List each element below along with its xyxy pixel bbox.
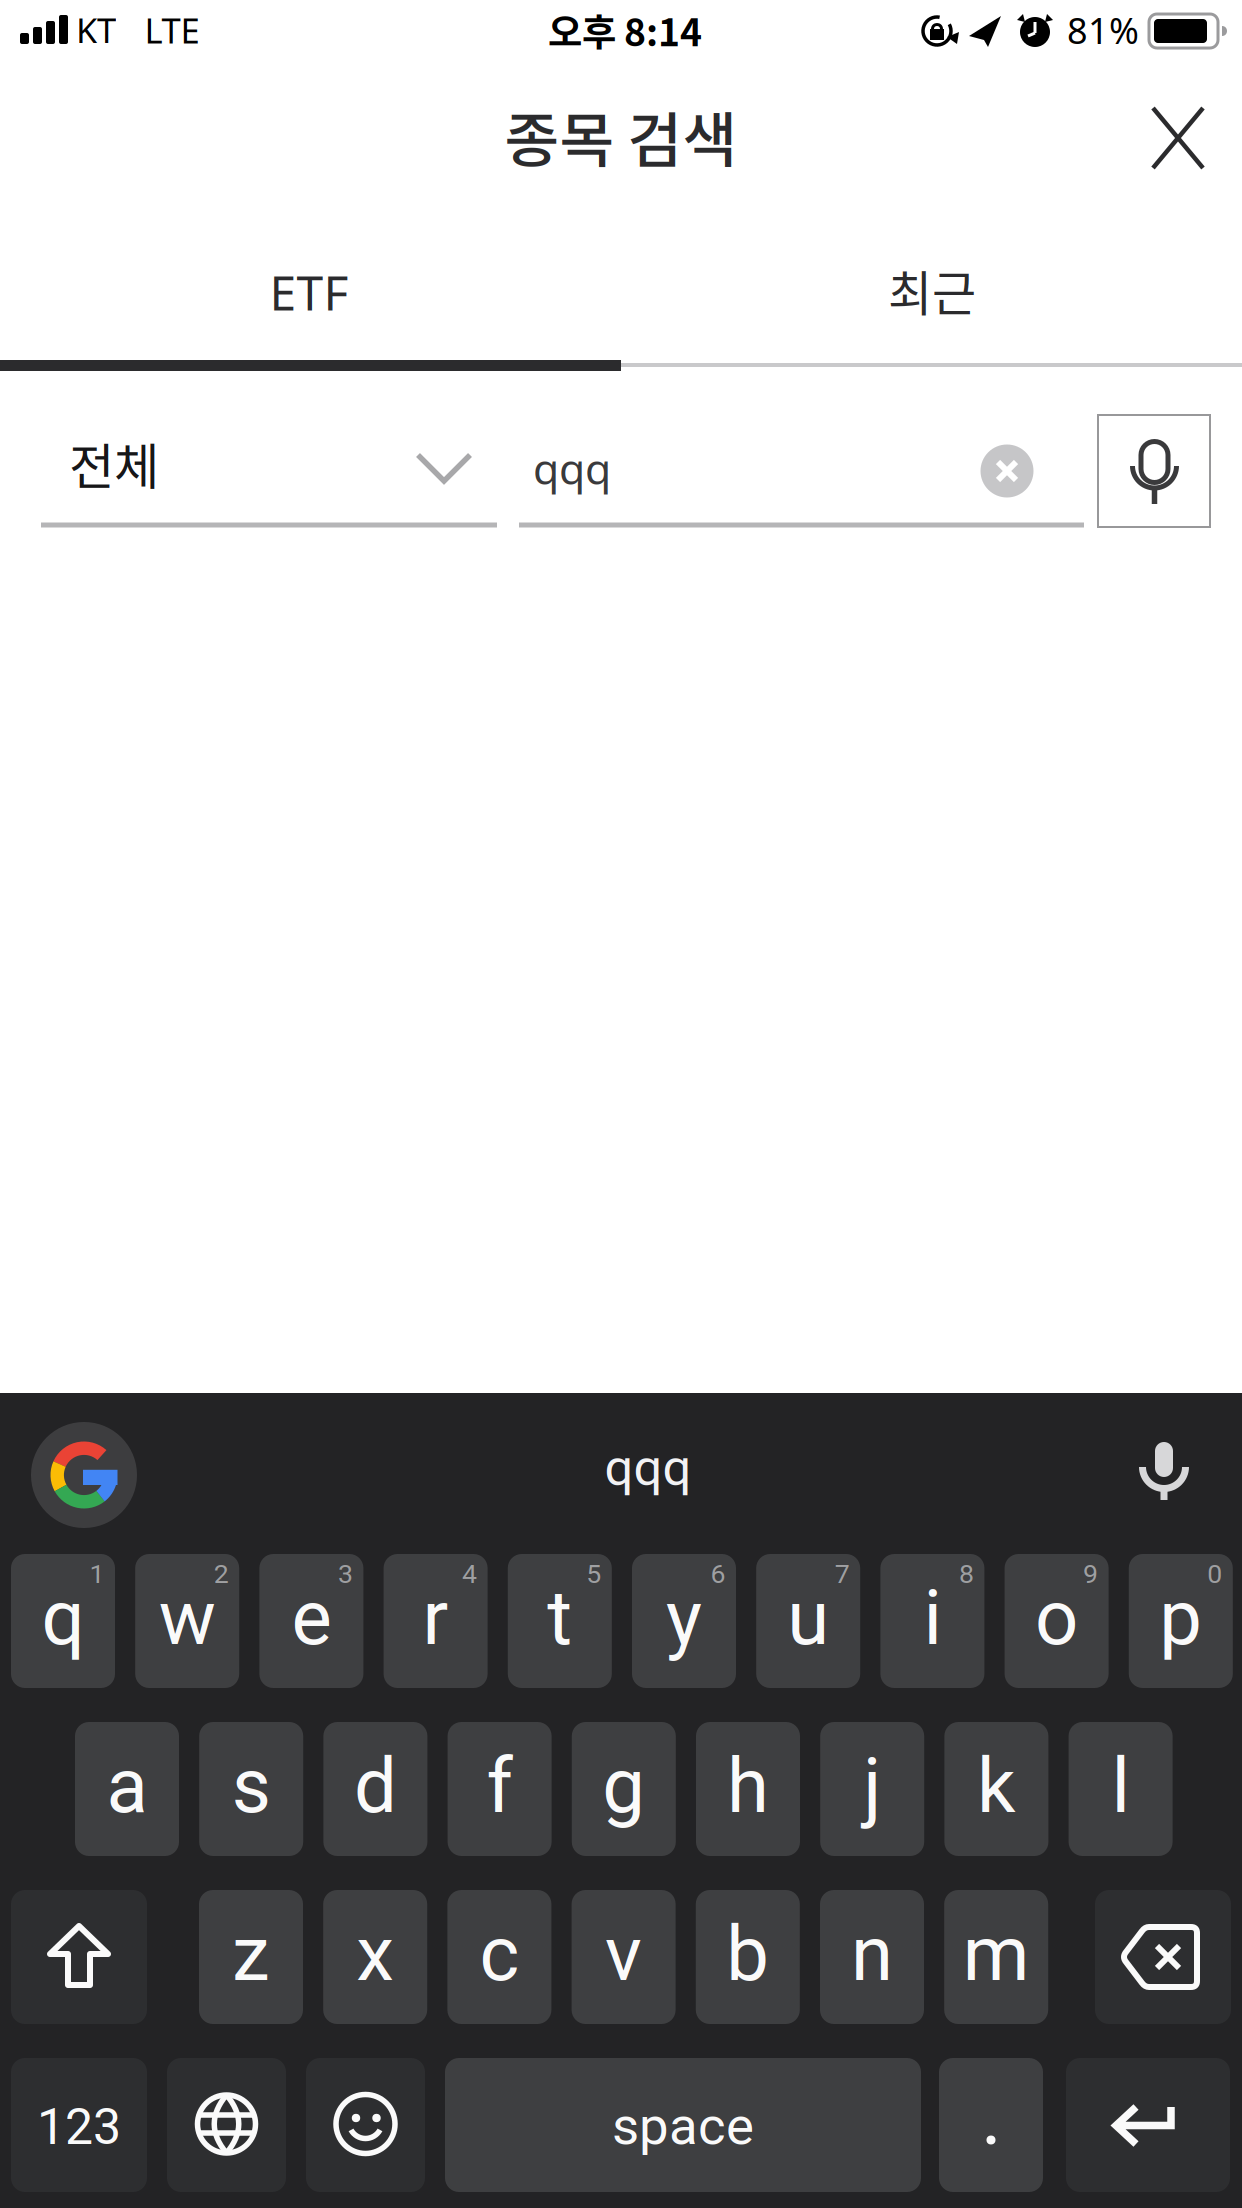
button[interactable]: 음성 검색: [1097, 414, 1211, 528]
staticText: x: [356, 1909, 394, 1999]
button[interactable]: 지우기: [980, 444, 1034, 498]
button[interactable]: 전체: [41, 407, 501, 527]
button[interactable]: m: [944, 1890, 1048, 2024]
button[interactable]: x: [323, 1890, 427, 2024]
button[interactable]: y: [632, 1554, 736, 1688]
staticText: 6: [710, 1558, 725, 1590]
button[interactable]: 123: [11, 2058, 147, 2192]
button[interactable]: q: [11, 1554, 115, 1688]
staticText: b: [726, 1909, 769, 1999]
button[interactable]: l: [1069, 1722, 1173, 1856]
staticText: r: [423, 1573, 449, 1663]
staticText: 8: [959, 1558, 974, 1590]
button[interactable]: z: [199, 1890, 303, 2024]
staticText: h: [727, 1741, 769, 1831]
staticText: v: [605, 1909, 642, 1999]
staticText: 2: [214, 1558, 229, 1590]
button[interactable]: i: [880, 1554, 984, 1688]
button[interactable]: s: [199, 1722, 303, 1856]
staticText: 9: [1083, 1558, 1098, 1590]
staticText: u: [787, 1573, 829, 1663]
staticText: ETF: [269, 260, 348, 324]
staticText: qqq: [604, 1438, 691, 1498]
staticText: 오후 8:14: [548, 3, 702, 57]
button[interactable]: space: [445, 2058, 921, 2192]
button[interactable]: p: [1129, 1554, 1233, 1688]
staticText: i: [923, 1573, 941, 1663]
button[interactable]: j: [820, 1722, 924, 1856]
button[interactable]: w: [135, 1554, 239, 1688]
staticText: z: [232, 1909, 270, 1999]
staticText: l: [1112, 1741, 1130, 1831]
button[interactable]: g: [572, 1722, 676, 1856]
button[interactable]: a: [75, 1722, 179, 1856]
button[interactable]: 최근: [621, 215, 1242, 365]
staticText: 전체: [69, 427, 159, 499]
staticText: g: [602, 1741, 645, 1831]
staticText: m: [963, 1909, 1030, 1999]
button[interactable]: b: [696, 1890, 800, 2024]
staticText: n: [851, 1909, 893, 1999]
button[interactable]: e: [259, 1554, 363, 1688]
staticText: c: [479, 1909, 519, 1999]
staticText: 3: [338, 1558, 353, 1590]
staticText: qqq: [533, 440, 611, 496]
button[interactable]: 이모티콘: [306, 2058, 425, 2192]
staticText: 4: [462, 1558, 477, 1590]
button[interactable]: v: [572, 1890, 676, 2024]
button[interactable]: Backspace: [1095, 1890, 1231, 2024]
staticText: 5: [586, 1558, 601, 1590]
staticText: 7: [835, 1558, 850, 1590]
staticText: 123: [37, 2098, 121, 2156]
button[interactable]: o: [1005, 1554, 1109, 1688]
staticText: t: [547, 1573, 572, 1663]
staticText: o: [1035, 1573, 1078, 1663]
button[interactable]: 닫기: [1123, 83, 1233, 193]
staticText: p: [1159, 1573, 1202, 1663]
button[interactable]: Google: [31, 1422, 137, 1528]
button[interactable]: ETF: [0, 217, 619, 367]
button[interactable]: 언어 전환: [167, 2058, 286, 2192]
staticText: j: [863, 1741, 881, 1831]
button[interactable]: u: [756, 1554, 860, 1688]
button[interactable]: 마침표: [939, 2058, 1043, 2192]
button[interactable]: r: [384, 1554, 488, 1688]
button[interactable]: h: [696, 1722, 800, 1856]
staticText: 81%: [1067, 6, 1139, 54]
button[interactable]: c: [447, 1890, 551, 2024]
staticText: d: [354, 1741, 397, 1831]
staticText: k: [977, 1741, 1016, 1831]
staticText: 0: [1207, 1558, 1222, 1590]
button[interactable]: n: [820, 1890, 924, 2024]
staticText: 최근: [888, 255, 976, 325]
staticText: 종목 검색: [504, 93, 737, 179]
button[interactable]: f: [448, 1722, 552, 1856]
staticText: w: [159, 1573, 216, 1663]
staticText: e: [291, 1573, 331, 1663]
staticText: y: [666, 1573, 702, 1663]
staticText: space: [612, 2095, 754, 2157]
button[interactable]: 음성 입력: [1124, 1416, 1204, 1526]
staticText: 1: [89, 1558, 104, 1590]
button[interactable]: d: [323, 1722, 427, 1856]
button[interactable]: k: [944, 1722, 1048, 1856]
staticText: a: [106, 1741, 147, 1831]
staticText: KT: [76, 7, 116, 53]
button[interactable]: t: [508, 1554, 612, 1688]
staticText: q: [41, 1573, 84, 1663]
staticText: LTE: [144, 7, 199, 53]
staticText: s: [232, 1741, 271, 1831]
button[interactable]: Return: [1066, 2058, 1230, 2192]
staticText: f: [487, 1741, 513, 1831]
button[interactable]: Shift: [11, 1890, 147, 2024]
